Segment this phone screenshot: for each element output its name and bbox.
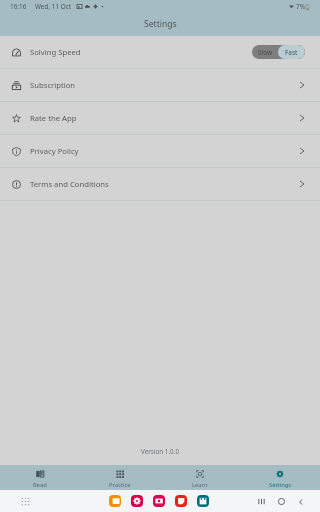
button[interactable]: Terms and Conditions (0, 168, 320, 200)
button[interactable]: Privacy Policy (0, 135, 320, 167)
staticText: Read (33, 481, 47, 489)
staticText: Fast (285, 48, 298, 57)
staticText: Practice (109, 481, 131, 489)
button[interactable]: Settings (240, 465, 320, 490)
staticText: Wed, 11 Oct (35, 2, 72, 11)
button[interactable]: Learn (160, 465, 240, 490)
button[interactable]: Notes (175, 495, 187, 507)
other: Recent apps (258, 498, 265, 505)
staticText: Rate the App (30, 113, 77, 123)
staticText: Settings (269, 481, 292, 489)
other: Back (298, 499, 304, 505)
button[interactable]: Files (109, 495, 121, 507)
other: Home (278, 498, 285, 505)
button[interactable]: Subscription (0, 69, 320, 101)
staticText: Version 1.0.0 (0, 447, 320, 456)
button[interactable]: Camera (153, 495, 165, 507)
button[interactable]: Calendar (197, 495, 209, 507)
button[interactable]: Rate the App (0, 102, 320, 134)
staticText: Learn (192, 481, 208, 489)
staticText: 7% (296, 2, 305, 11)
staticText: Privacy Policy (30, 146, 79, 156)
staticText: Terms and Conditions (30, 179, 109, 189)
button[interactable]: Solving Speed (0, 36, 320, 68)
staticText: Settings (144, 18, 177, 30)
button[interactable]: Practice (80, 465, 160, 490)
button[interactable]: Settings app (131, 495, 143, 507)
staticText: Slow (258, 48, 272, 57)
button[interactable]: Read (0, 465, 80, 490)
staticText: 16:16 (10, 2, 27, 11)
button[interactable]: Slow (252, 45, 305, 59)
staticText: Subscription (30, 80, 76, 90)
staticText: Solving Speed (30, 47, 81, 57)
